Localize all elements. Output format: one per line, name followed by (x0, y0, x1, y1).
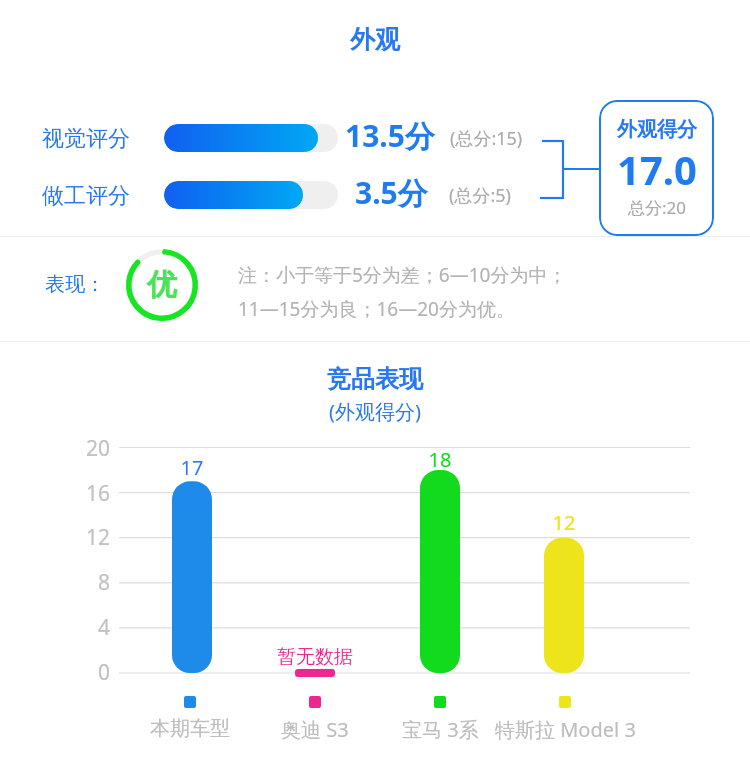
staticText: 13.5分 (345, 115, 435, 156)
staticText: 总分:20 (628, 196, 687, 219)
staticText: 4 (72, 613, 110, 642)
staticText: 竞品表现 (327, 364, 423, 394)
staticText: 3.5分 (355, 172, 428, 213)
staticText: (总分:5) (449, 183, 511, 208)
button[interactable] (164, 181, 338, 209)
staticText: (总分:15) (450, 126, 523, 151)
button[interactable] (164, 124, 338, 152)
staticText: 0 (72, 658, 110, 687)
button[interactable]: 特斯拉 Model 3 (475, 696, 655, 743)
button[interactable]: 外观得分 (599, 100, 714, 236)
staticText: 优 (147, 266, 177, 304)
button[interactable]: 本期车型 (100, 696, 280, 741)
staticText: 12 (72, 523, 110, 552)
staticText: 特斯拉 Model 3 (495, 716, 636, 743)
staticText: 17.0 (617, 142, 697, 196)
staticText: 16 (72, 479, 110, 508)
staticText: 17 (112, 454, 272, 481)
staticText: 宝马 3系 (402, 716, 479, 743)
staticText: 做工评分 (42, 182, 130, 210)
staticText: 18 (360, 446, 520, 473)
staticText: 12 (484, 509, 644, 536)
button[interactable]: 奥迪 S3 (225, 696, 405, 743)
staticText: (外观得分) (329, 398, 421, 425)
staticText: 8 (72, 568, 110, 597)
staticText: 表现： (45, 272, 105, 297)
staticText: 注：小于等于5分为差；6—10分为中； (238, 262, 567, 288)
staticText: 外观得分 (617, 117, 697, 142)
staticText: 奥迪 S3 (281, 716, 349, 743)
staticText: 20 (72, 434, 110, 463)
button[interactable]: 宝马 3系 (350, 696, 530, 743)
staticText: 暂无数据 (235, 645, 395, 669)
staticText: 视觉评分 (42, 125, 130, 153)
staticText: 本期车型 (150, 716, 230, 741)
staticText: 外观 (0, 24, 750, 55)
staticText: 11—15分为良；16—20分为优。 (238, 296, 515, 322)
